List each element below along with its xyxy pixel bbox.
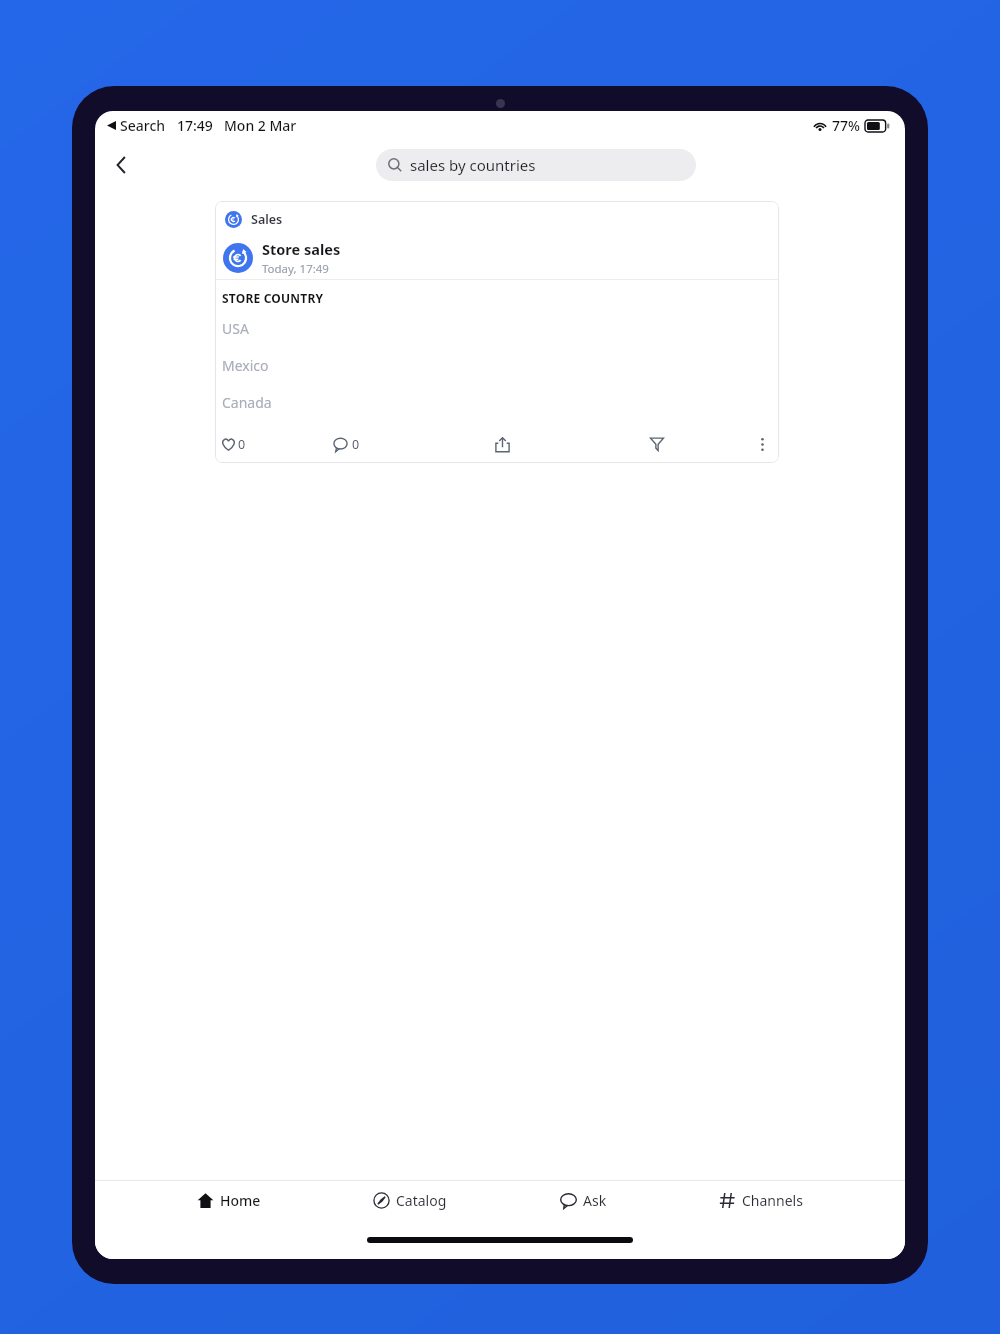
staticText: 17:49: [177, 116, 213, 135]
button[interactable]: Filter: [645, 432, 669, 456]
staticText: Mon 2 Mar: [224, 116, 297, 135]
staticText: 77%: [832, 116, 860, 135]
staticText: Ask: [583, 1191, 607, 1210]
staticText: Today, 17:49: [262, 261, 329, 277]
staticText: 0: [352, 436, 360, 453]
button[interactable]: Channels: [709, 1185, 813, 1216]
button[interactable]: Back: [103, 146, 141, 184]
button[interactable]: Sales: [215, 201, 779, 237]
staticText: Canada: [222, 393, 272, 412]
button[interactable]: Home: [187, 1185, 271, 1216]
staticText: Mexico: [222, 356, 269, 375]
button[interactable]: Store sales: [215, 237, 779, 279]
button[interactable]: 0: [221, 436, 246, 453]
staticText: Catalog: [396, 1191, 447, 1210]
staticText: Search: [120, 116, 166, 135]
staticText: Store sales: [262, 239, 341, 259]
button[interactable]: sales by countries: [376, 149, 696, 181]
staticText: Channels: [742, 1191, 803, 1210]
staticText: STORE COUNTRY: [222, 290, 324, 306]
staticText: 0: [238, 436, 246, 453]
button[interactable]: Ask: [550, 1185, 617, 1216]
staticText: sales by countries: [410, 155, 536, 175]
staticText: USA: [222, 319, 249, 338]
staticText: Sales: [251, 211, 283, 228]
button[interactable]: More options: [751, 433, 773, 455]
button[interactable]: Catalog: [363, 1185, 457, 1216]
staticText: Home: [220, 1191, 261, 1210]
button[interactable]: Share: [490, 432, 514, 456]
button[interactable]: 0: [333, 436, 360, 453]
